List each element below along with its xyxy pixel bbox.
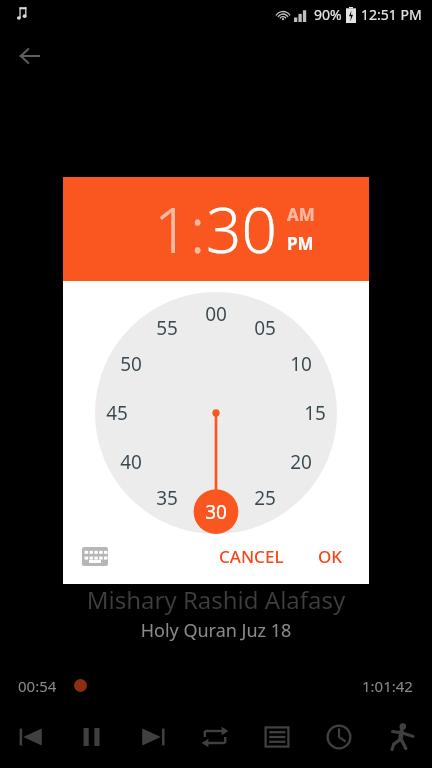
staticText: : xyxy=(190,187,206,271)
staticText: 50 xyxy=(120,351,142,377)
staticText: 30 xyxy=(205,499,227,525)
staticText: OK xyxy=(318,545,343,568)
button[interactable]: Playlist xyxy=(246,706,308,768)
button[interactable]: CANCEL xyxy=(209,537,294,576)
staticText: 35 xyxy=(156,485,178,511)
button[interactable]: AM xyxy=(287,203,315,226)
button[interactable]: Back xyxy=(8,34,52,78)
staticText: 45 xyxy=(106,400,128,426)
button[interactable]: Seek xyxy=(74,679,87,692)
staticText: 55 xyxy=(156,315,178,341)
button[interactable]: OK xyxy=(308,537,353,576)
button[interactable]: PM xyxy=(287,232,314,255)
staticText: 1 xyxy=(154,187,190,271)
staticText: 20 xyxy=(290,449,312,475)
staticText: 00 xyxy=(205,301,227,327)
staticText: PM xyxy=(287,232,314,255)
staticText: 1:01:42 xyxy=(362,676,413,696)
button[interactable]: 1 xyxy=(154,187,190,271)
button[interactable]: Previous xyxy=(0,706,61,768)
staticText: 05 xyxy=(254,315,276,341)
button[interactable]: Switch to text input xyxy=(75,536,115,576)
button[interactable]: Minute dial xyxy=(95,292,337,534)
staticText: Mishary Rashid Alafasy xyxy=(0,583,432,616)
staticText: AM xyxy=(287,203,315,226)
staticText: 00:54 xyxy=(18,676,57,696)
staticText: 15 xyxy=(304,400,326,426)
button[interactable]: Sleep timer xyxy=(308,706,370,768)
button[interactable]: Repeat xyxy=(184,706,246,768)
staticText: Holy Quran Juz 18 xyxy=(0,618,432,643)
staticText: 25 xyxy=(254,485,276,511)
staticText: 30 xyxy=(206,187,277,271)
staticText: 12:51 PM xyxy=(361,5,422,24)
staticText: CANCEL xyxy=(219,545,284,568)
button[interactable]: Pause xyxy=(61,706,122,768)
button[interactable]: Walk mode xyxy=(370,706,432,768)
staticText: 10 xyxy=(290,351,312,377)
button[interactable]: Next xyxy=(122,706,184,768)
button[interactable]: 30 xyxy=(206,187,277,271)
staticText: 40 xyxy=(120,449,142,475)
staticText: 90% xyxy=(314,5,342,24)
